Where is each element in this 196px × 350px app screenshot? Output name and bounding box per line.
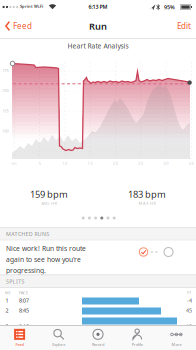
button[interactable]: Record (78, 325, 118, 350)
staticText: 150 (2, 88, 8, 93)
button[interactable]: Nice work! Run this route (0, 240, 196, 274)
staticText: MAX HR (138, 200, 155, 206)
staticText: 2.0 (113, 160, 118, 166)
staticText: 2 (5, 307, 8, 314)
staticText: Heart Rate Analysis (67, 41, 128, 50)
staticText: MI (5, 290, 10, 295)
staticText: 100 (2, 128, 8, 134)
staticText: Feed (16, 342, 24, 347)
staticText: More (171, 342, 181, 347)
staticText: 12 (186, 323, 192, 330)
button[interactable]: More (157, 325, 196, 350)
staticText: 3.0 (163, 160, 168, 166)
staticText: mi (11, 160, 16, 166)
staticText: 8:07 (19, 297, 29, 304)
button[interactable]: Profile (118, 325, 157, 350)
staticText: 1 (5, 297, 8, 304)
staticText: AVG HR (41, 200, 56, 206)
button[interactable]: Feed (0, 325, 39, 350)
staticText: Feed (13, 21, 32, 31)
staticText: FT (187, 290, 191, 295)
staticText: 9:18 (19, 323, 29, 330)
staticText: Explore (52, 342, 65, 347)
staticText: 3.5 (189, 160, 194, 166)
staticText: again to see how you're (6, 255, 81, 264)
staticText: MATCHED RUNS (6, 230, 49, 238)
staticText: PACE (19, 290, 28, 295)
staticText: 159 bpm (30, 188, 68, 200)
staticText: 45 (186, 307, 192, 314)
button[interactable]: Explore (39, 325, 78, 350)
staticText: Edit (177, 21, 191, 31)
staticText: .5 (38, 160, 41, 166)
staticText: -4 (187, 297, 192, 304)
staticText: Sprint Wi-Fi (20, 4, 43, 9)
staticText: 3 (5, 323, 8, 330)
staticText: 125 (2, 108, 8, 113)
staticText: 175 (2, 68, 8, 73)
staticText: progressing. (6, 266, 46, 275)
button[interactable]: Back (0, 14, 32, 38)
staticText: 1.5 (87, 160, 92, 166)
staticText: 2.5 (138, 160, 143, 166)
staticText: 183 bpm (128, 188, 166, 200)
staticText: 95% (164, 4, 175, 11)
staticText: Nice work! Run this route (6, 244, 86, 253)
staticText: Record (92, 342, 104, 347)
staticText: Profile (132, 342, 143, 347)
staticText: 1.0 (62, 160, 67, 166)
staticText: 6:13 PM (88, 3, 107, 10)
button[interactable]: Edit (177, 14, 196, 38)
staticText: 8:45 (19, 307, 29, 314)
staticText: SPLITS (6, 278, 24, 285)
staticText: Run (89, 20, 107, 32)
